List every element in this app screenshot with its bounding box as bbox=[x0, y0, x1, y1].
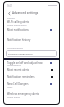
button[interactable]: Toggle on bbox=[49, 82, 53, 86]
staticText: Calling bbox=[7, 16, 15, 19]
staticText: New Cell Dangers bbox=[7, 82, 49, 86]
button[interactable]: Back bbox=[6, 10, 12, 16]
staticText: Toggle on/off and adjust how bbox=[7, 61, 49, 65]
staticText: Floating notifications bbox=[8, 52, 33, 55]
staticText: Show alerts bbox=[7, 95, 20, 98]
button[interactable]: Floating notifications bbox=[6, 50, 57, 57]
staticText: Most recent alerts bbox=[7, 68, 49, 72]
staticText: Advanced settings bbox=[12, 11, 39, 15]
staticText: Conversations bbox=[7, 46, 24, 49]
button[interactable]: Most recent alerts bbox=[4, 67, 59, 72]
button[interactable]: New Cell Dangers bbox=[4, 81, 59, 86]
staticText: Show notification bbox=[7, 23, 27, 26]
staticText: Notification reminders bbox=[7, 75, 49, 79]
button[interactable]: Wi-Fi calling alerts bbox=[4, 19, 59, 24]
staticText: Notification history bbox=[7, 38, 49, 42]
button[interactable]: Notification history bbox=[4, 37, 59, 42]
button[interactable]: Wireless emergency alerts bbox=[4, 91, 59, 96]
staticText: Wi-Fi calling alerts bbox=[7, 20, 49, 24]
staticText: 9:41 bbox=[7, 4, 13, 8]
button[interactable]: Toggle off bbox=[50, 68, 54, 72]
button[interactable]: Notification reminders bbox=[4, 74, 59, 79]
button[interactable]: Toggle on bbox=[49, 28, 53, 32]
staticText: Alert bbox=[7, 85, 13, 88]
button[interactable]: Toggle on bbox=[49, 61, 53, 65]
staticText: notifications bbox=[7, 63, 21, 66]
button[interactable]: Most notifications bbox=[4, 27, 59, 32]
button[interactable]: Toggle off bbox=[50, 75, 54, 79]
button[interactable]: Toggle on/off and adjust how bbox=[4, 60, 59, 65]
staticText: Wireless emergency alerts bbox=[7, 92, 49, 96]
staticText: Most notifications bbox=[7, 28, 49, 32]
